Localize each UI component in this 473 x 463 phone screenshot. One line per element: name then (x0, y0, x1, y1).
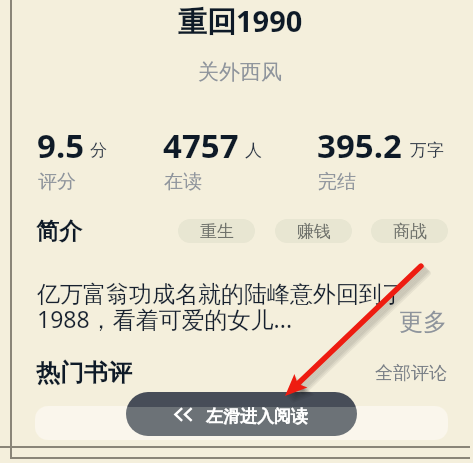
staticText: 在读 (164, 170, 202, 194)
staticText: 分 (90, 140, 107, 161)
staticText: 万字 (410, 140, 444, 161)
button[interactable]: 更多 (399, 307, 447, 337)
staticText: 简介 (36, 217, 82, 246)
staticText: 人 (245, 140, 262, 161)
staticText: 395.2 (317, 123, 402, 168)
staticText: 完结 (318, 170, 356, 194)
staticText: 赚钱 (297, 221, 331, 242)
staticText: 热门书评 (36, 358, 132, 388)
staticText: 重生 (200, 221, 234, 242)
button[interactable]: 商战 (371, 219, 448, 243)
staticText: 9.5 (37, 123, 85, 168)
staticText: 更多 (399, 307, 447, 337)
staticText: 关外西风 (198, 59, 282, 85)
staticText: 重回1990 (178, 1, 303, 41)
staticText: 1988，看着可爱的女儿... (37, 303, 293, 334)
staticText: 商战 (393, 221, 427, 242)
staticText: 亿万富翁功成名就的陆峰意外回到了 (37, 280, 405, 309)
staticText: 左滑进入阅读 (206, 406, 308, 427)
button[interactable]: 赚钱 (275, 219, 352, 243)
button[interactable]: 全部评论 (375, 362, 447, 385)
staticText: 全部评论 (375, 362, 447, 385)
staticText: 4757 (163, 123, 239, 168)
staticText: 评分 (38, 170, 76, 194)
button[interactable]: 重生 (178, 219, 255, 243)
button[interactable]: 左滑进入阅读 (126, 392, 357, 436)
